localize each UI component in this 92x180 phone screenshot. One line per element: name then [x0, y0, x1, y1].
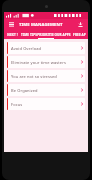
- staticText: PRIORITIES: [37, 33, 54, 37]
- staticText: You are not so stressed: [11, 74, 78, 79]
- staticText: Focus: [11, 102, 78, 107]
- staticText: TIME MANAGEMENT: [19, 22, 76, 28]
- staticText: Be Organized: [11, 88, 78, 93]
- button[interactable]: TIME TIPS: [20, 30, 37, 39]
- button[interactable]: Avoid Overload: [7, 42, 85, 54]
- button[interactable]: You are not so stressed: [7, 70, 85, 82]
- staticText: TIME TIPS: [21, 33, 37, 37]
- staticText: OUR APPS: [54, 33, 71, 37]
- staticText: Eliminate your time wasters: [11, 60, 78, 65]
- staticText: Avoid Overload: [11, 46, 78, 51]
- staticText: FREE AP: [73, 33, 86, 37]
- button[interactable]: FREE AP: [71, 30, 88, 39]
- button[interactable]: PRIORITIES: [37, 30, 54, 39]
- button[interactable]: Eliminate your time wasters: [7, 56, 85, 68]
- button[interactable]: Focus: [7, 98, 85, 110]
- button[interactable]: Be Organized: [7, 84, 85, 96]
- button[interactable]: Download: [76, 20, 85, 29]
- button[interactable]: OUR APPS: [54, 30, 71, 39]
- button[interactable]: Open navigation menu: [7, 20, 16, 29]
- staticText: NEXT !: [7, 33, 18, 37]
- button[interactable]: NEXT !: [4, 30, 20, 39]
